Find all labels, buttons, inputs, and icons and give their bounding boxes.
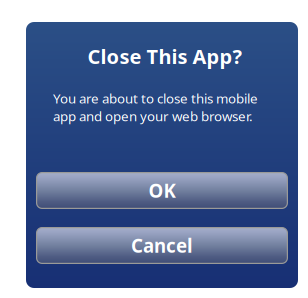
staticText: You are about to close this mobile app a… — [53, 90, 258, 125]
button[interactable]: OK — [36, 172, 288, 209]
staticText: OK — [148, 178, 175, 203]
button[interactable]: Cancel — [36, 227, 288, 264]
staticText: Cancel — [131, 233, 193, 258]
staticText: Close This App? — [87, 43, 242, 70]
